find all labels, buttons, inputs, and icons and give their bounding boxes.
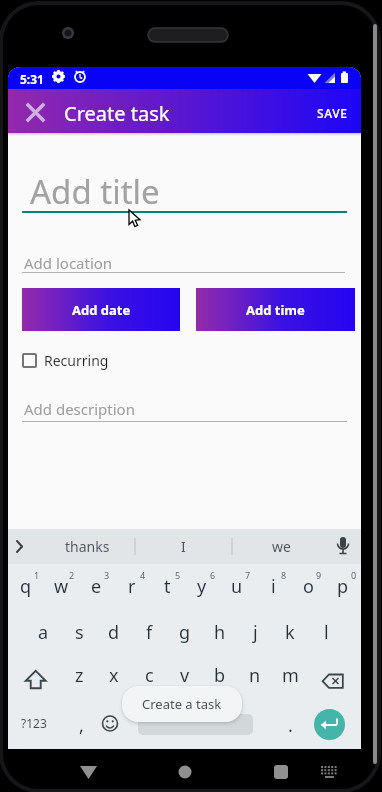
staticText: z: [75, 663, 84, 688]
button[interactable]: t: [150, 564, 184, 608]
button[interactable]: o: [291, 564, 325, 608]
button[interactable]: d: [97, 610, 131, 654]
staticText: 6: [210, 569, 216, 581]
button[interactable]: a: [26, 610, 60, 654]
staticText: 7: [245, 569, 251, 581]
staticText: a: [38, 620, 49, 645]
staticText: g: [179, 620, 191, 645]
button[interactable]: r: [115, 564, 149, 608]
staticText: Add date: [72, 301, 131, 319]
button[interactable]: w: [44, 564, 78, 608]
staticText: m: [282, 663, 299, 688]
staticText: 0: [351, 569, 357, 581]
staticText: v: [180, 663, 190, 688]
button[interactable]: q: [9, 564, 43, 608]
button[interactable]: s: [62, 610, 96, 654]
staticText: ?123: [21, 715, 47, 731]
staticText: 1: [34, 569, 40, 581]
button[interactable]: v: [168, 653, 202, 697]
staticText: f: [146, 620, 153, 645]
button[interactable]: [314, 709, 345, 740]
staticText: q: [20, 574, 32, 599]
button[interactable]: g: [168, 610, 202, 654]
button[interactable]: z: [62, 653, 96, 697]
button[interactable]: l: [309, 610, 343, 654]
staticText: y: [197, 574, 207, 599]
button[interactable]: ,: [71, 710, 91, 740]
staticText: SAVE: [317, 105, 348, 121]
staticText: Add time: [246, 301, 305, 319]
staticText: 9: [316, 569, 322, 581]
button[interactable]: f: [132, 610, 166, 654]
staticText: o: [303, 574, 314, 599]
button[interactable]: n: [238, 653, 272, 697]
staticText: i: [271, 574, 276, 599]
staticText: t: [164, 574, 171, 599]
button[interactable]: Add date: [22, 288, 180, 331]
staticText: l: [324, 620, 329, 645]
button[interactable]: b: [203, 653, 237, 697]
staticText: k: [285, 620, 295, 645]
staticText: Recurring: [44, 351, 109, 370]
button[interactable]: m: [273, 653, 307, 697]
staticText: Create task: [64, 100, 170, 127]
staticText: b: [214, 663, 226, 688]
staticText: 2: [69, 569, 75, 581]
staticText: h: [214, 620, 226, 645]
staticText: 5: [175, 569, 181, 581]
staticText: n: [249, 663, 261, 688]
button[interactable]: u: [220, 564, 254, 608]
button[interactable]: Add description: [24, 399, 135, 419]
staticText: r: [128, 574, 136, 599]
button[interactable]: Recurring: [22, 351, 109, 370]
button[interactable]: [22, 211, 347, 213]
staticText: c: [145, 663, 154, 688]
button[interactable]: we: [251, 529, 311, 564]
button[interactable]: j: [238, 610, 272, 654]
staticText: u: [231, 574, 243, 599]
staticText: x: [109, 663, 119, 688]
staticText: 5:31: [20, 71, 44, 87]
staticText: thanks: [65, 537, 110, 556]
button[interactable]: [26, 103, 45, 122]
staticText: 8: [281, 569, 287, 581]
staticText: Create a task: [142, 695, 222, 713]
button[interactable]: SAVE: [304, 100, 360, 126]
staticText: 3: [104, 569, 110, 581]
button[interactable]: c: [132, 653, 166, 697]
button[interactable]: .: [280, 710, 300, 740]
staticText: I: [181, 537, 186, 556]
button[interactable]: h: [203, 610, 237, 654]
button[interactable]: y: [185, 564, 219, 608]
button[interactable]: Add location: [24, 253, 113, 273]
staticText: p: [337, 574, 349, 599]
staticText: 4: [140, 569, 146, 581]
button[interactable]: i: [256, 564, 290, 608]
staticText: ,: [79, 713, 84, 738]
staticText: j: [253, 620, 258, 645]
staticText: Add title: [30, 169, 160, 214]
staticText: we: [272, 537, 291, 556]
staticText: w: [54, 574, 69, 599]
staticText: e: [91, 574, 102, 599]
staticText: .: [288, 713, 293, 738]
button[interactable]: ?123: [12, 708, 56, 738]
button[interactable]: I: [153, 529, 213, 564]
staticText: d: [108, 620, 120, 645]
button[interactable]: k: [273, 610, 307, 654]
button[interactable]: e: [79, 564, 113, 608]
button[interactable]: p: [326, 564, 360, 608]
button[interactable]: x: [97, 653, 131, 697]
staticText: s: [75, 620, 84, 645]
button[interactable]: Add time: [196, 288, 355, 331]
button[interactable]: thanks: [47, 529, 127, 564]
